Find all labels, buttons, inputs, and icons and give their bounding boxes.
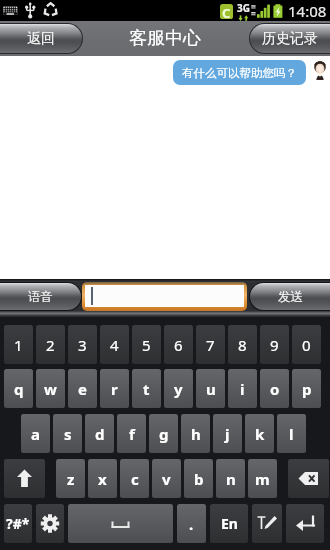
staticText: k xyxy=(255,424,265,444)
staticText: 语音 xyxy=(28,289,53,305)
staticText: 8 xyxy=(238,335,247,355)
button[interactable]: c xyxy=(120,459,149,498)
button[interactable]: 5 xyxy=(132,325,161,364)
staticText: y xyxy=(174,379,183,399)
staticText: 有什么可以帮助您吗？ xyxy=(182,66,297,80)
staticText: C xyxy=(222,4,231,19)
button[interactable]: v xyxy=(152,459,181,498)
button[interactable]: e xyxy=(68,369,97,408)
button[interactable]: 2 xyxy=(36,325,65,364)
staticText: p xyxy=(302,379,312,399)
button[interactable]: z xyxy=(56,459,85,498)
other: Agent avatar xyxy=(314,60,326,80)
button[interactable]: r xyxy=(100,369,129,408)
button[interactable]: En xyxy=(210,504,248,543)
staticText: 3G xyxy=(237,1,250,15)
button[interactable]: 历史记录 xyxy=(250,24,330,53)
button[interactable]: Settings xyxy=(36,504,64,543)
staticText: 5 xyxy=(142,335,151,355)
staticText: 历史记录 xyxy=(262,30,318,48)
button[interactable]: Backspace xyxy=(288,459,329,498)
button[interactable]: 语音 xyxy=(0,283,81,310)
staticText: 发送 xyxy=(278,289,303,305)
button[interactable]: w xyxy=(36,369,65,408)
button[interactable]: 有什么可以帮助您吗？ xyxy=(182,60,297,85)
staticText: w xyxy=(44,379,57,399)
button[interactable] xyxy=(85,285,244,307)
staticText: h xyxy=(191,424,201,444)
button[interactable]: Shift xyxy=(4,459,45,498)
button[interactable]: b xyxy=(184,459,213,498)
button[interactable]: x xyxy=(88,459,117,498)
button[interactable]: u xyxy=(196,369,225,408)
button[interactable]: d xyxy=(85,414,114,453)
staticText: 2 xyxy=(46,335,55,355)
button[interactable]: 6 xyxy=(164,325,193,364)
staticText: r xyxy=(111,379,118,399)
staticText: 6 xyxy=(174,335,183,355)
button[interactable]: 1 xyxy=(4,325,33,364)
button[interactable]: o xyxy=(260,369,289,408)
staticText: n xyxy=(226,469,236,489)
button[interactable]: a xyxy=(21,414,50,453)
staticText: q xyxy=(14,379,24,399)
button[interactable]: 4 xyxy=(100,325,129,364)
staticText: l xyxy=(289,424,294,444)
button[interactable]: 7 xyxy=(196,325,225,364)
staticText: 14:08 xyxy=(288,1,327,21)
button[interactable]: n xyxy=(216,459,245,498)
button[interactable]: m xyxy=(248,459,277,498)
button[interactable]: p xyxy=(292,369,321,408)
button[interactable]: t xyxy=(132,369,161,408)
staticText: c xyxy=(131,469,139,489)
button[interactable]: 8 xyxy=(228,325,257,364)
staticText: d xyxy=(95,424,105,444)
staticText: v xyxy=(162,469,171,489)
staticText: a xyxy=(31,424,40,444)
staticText: 4 xyxy=(110,335,119,355)
staticText: j xyxy=(225,424,230,444)
staticText: 3 xyxy=(78,335,87,355)
button[interactable]: 返回 xyxy=(0,24,82,53)
staticText: 0 xyxy=(302,335,311,355)
staticText: 客服中心 xyxy=(129,27,201,50)
staticText: u xyxy=(206,379,216,399)
button[interactable]: Handwriting input xyxy=(252,504,282,543)
staticText: b xyxy=(194,469,204,489)
button[interactable]: q xyxy=(4,369,33,408)
button[interactable]: i xyxy=(228,369,257,408)
button[interactable]: 9 xyxy=(260,325,289,364)
staticText: ?#* xyxy=(6,514,30,533)
staticText: x xyxy=(98,469,107,489)
staticText: f xyxy=(129,424,135,444)
staticText: i xyxy=(240,379,245,399)
button[interactable]: f xyxy=(117,414,146,453)
button[interactable]: ?#* xyxy=(4,504,32,543)
button[interactable]: h xyxy=(181,414,210,453)
staticText: 9 xyxy=(270,335,279,355)
button[interactable]: j xyxy=(213,414,242,453)
staticText: z xyxy=(67,469,75,489)
button[interactable]: g xyxy=(149,414,178,453)
staticText: 7 xyxy=(206,335,215,355)
button[interactable]: l xyxy=(277,414,306,453)
staticText: 返回 xyxy=(27,30,55,48)
staticText: t xyxy=(143,379,150,399)
button[interactable]: 3 xyxy=(68,325,97,364)
staticText: . xyxy=(189,514,194,534)
button[interactable]: . xyxy=(177,504,206,543)
button[interactable]: Enter xyxy=(286,504,324,543)
staticText: m xyxy=(255,469,270,489)
button[interactable]: 发送 xyxy=(250,283,330,310)
button[interactable]: k xyxy=(245,414,274,453)
button[interactable]: s xyxy=(53,414,82,453)
button[interactable]: Space xyxy=(68,504,173,543)
staticText: g xyxy=(159,424,169,444)
staticText: 1 xyxy=(14,335,23,355)
staticText: o xyxy=(270,379,280,399)
button[interactable]: y xyxy=(164,369,193,408)
button[interactable]: 0 xyxy=(292,325,321,364)
staticText: s xyxy=(64,424,72,444)
staticText: e xyxy=(78,379,87,399)
staticText: En xyxy=(221,514,238,533)
